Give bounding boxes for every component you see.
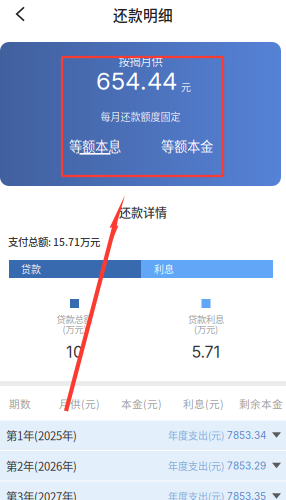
staticText: 本金(元)	[121, 396, 162, 411]
staticText: 第2年(2026年)	[6, 457, 77, 474]
staticText: 贷款利息	[188, 312, 224, 326]
staticText: 支付总额: 15.71万元	[8, 234, 100, 249]
staticText: 等额本息	[69, 136, 121, 155]
button[interactable]: 第2年(2026年)	[0, 451, 286, 480]
staticText: 5.71	[191, 342, 220, 362]
staticText: 按揭月供	[118, 53, 162, 69]
staticText: (万元)	[194, 322, 218, 336]
staticText: 元	[181, 80, 191, 94]
button[interactable]: 第3年(2027年)	[0, 481, 286, 500]
button[interactable]: 第1年(2025年)	[0, 420, 286, 450]
staticText: 7853.35	[224, 490, 266, 500]
staticText: 等额本金	[161, 136, 213, 155]
button[interactable]: 等额本息	[47, 136, 143, 166]
staticText: 贷款总额	[56, 312, 92, 326]
staticText: 年度支出(元)	[168, 458, 224, 473]
staticText: 年度支出(元)	[168, 428, 224, 442]
staticText: 利息	[154, 262, 174, 276]
staticText: 7853.34	[224, 429, 266, 441]
staticText: 还款详情	[119, 204, 167, 221]
staticText: (万元)	[62, 322, 86, 336]
staticText: 利息(元)	[183, 396, 224, 411]
staticText: 654.44	[96, 66, 177, 95]
staticText: 贷款	[21, 262, 41, 276]
button[interactable]: 返回	[4, 1, 36, 27]
staticText: 第3年(2027年)	[6, 488, 77, 500]
staticText: 还款明细	[113, 4, 173, 25]
staticText: 10	[66, 342, 83, 362]
staticText: 每月还款额度固定	[100, 109, 180, 124]
staticText: 年度支出(元)	[168, 489, 224, 500]
staticText: 7853.29	[224, 460, 266, 472]
staticText: 期数	[9, 396, 31, 411]
button[interactable]: 等额本金	[139, 136, 235, 166]
staticText: 第1年(2025年)	[6, 427, 77, 443]
staticText: 剩余本金	[239, 396, 283, 411]
staticText: 月供(元)	[59, 396, 100, 411]
